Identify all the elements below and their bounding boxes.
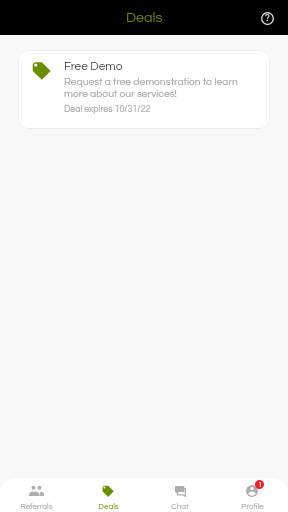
button[interactable]: Referrals bbox=[0, 480, 72, 512]
staticText: Chat bbox=[171, 502, 189, 510]
button[interactable]: 1 bbox=[216, 480, 288, 512]
staticText: Referrals bbox=[20, 502, 53, 510]
button[interactable]: Help bbox=[254, 5, 280, 31]
staticText: Deals bbox=[98, 502, 119, 510]
staticText: Profile bbox=[241, 502, 264, 510]
staticText: Request a free demonstration to learn mo… bbox=[64, 77, 257, 99]
button[interactable]: Free Demo bbox=[18, 50, 270, 129]
button[interactable]: Chat bbox=[144, 480, 216, 512]
staticText: Deals bbox=[126, 10, 163, 25]
staticText: Free Demo bbox=[64, 60, 123, 72]
staticText: 1 bbox=[258, 481, 262, 488]
button[interactable]: Deals bbox=[72, 480, 144, 512]
staticText: Deal expires 10/31/22 bbox=[64, 105, 151, 114]
staticText: ? bbox=[265, 14, 270, 23]
